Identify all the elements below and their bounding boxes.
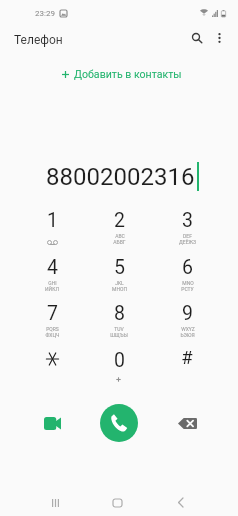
staticText: ШЩЪЫ — [110, 332, 128, 338]
staticText: ИЙКЛ — [45, 286, 59, 292]
staticText: GHI — [48, 280, 57, 286]
staticText: Добавить в контакты — [74, 68, 182, 80]
staticText: 88002002316 — [46, 163, 195, 191]
button[interactable]: 8 — [89, 300, 149, 344]
button[interactable]: Search — [183, 24, 210, 51]
button[interactable]: Back — [168, 490, 193, 515]
button[interactable]: 9 — [157, 300, 217, 344]
staticText: МНОП — [112, 286, 127, 292]
staticText: PQRS — [46, 326, 59, 332]
staticText: 8 — [114, 302, 125, 325]
staticText: ДЕЁЖЗ — [179, 239, 196, 245]
staticText: ФХЦЧ — [45, 332, 60, 338]
staticText: TUV — [114, 326, 124, 332]
staticText: WXYZ — [181, 326, 195, 332]
staticText: 0 — [114, 349, 125, 372]
button[interactable]: 5 — [89, 254, 149, 298]
button[interactable]: Home — [105, 490, 130, 515]
button[interactable]: Call — [100, 404, 138, 442]
staticText: 2 — [114, 209, 125, 232]
button[interactable]: Recent apps — [43, 490, 68, 515]
button[interactable] — [22, 347, 82, 391]
button[interactable]: Video call — [36, 407, 68, 439]
staticText: MNO — [182, 280, 194, 286]
button[interactable]: 3 — [157, 207, 217, 251]
staticText: ЬЭЮЯ — [180, 332, 195, 338]
button[interactable]: # — [157, 347, 217, 391]
button[interactable]: 4 — [22, 254, 82, 298]
staticText: 7 — [47, 302, 58, 325]
staticText: 5 — [114, 256, 125, 279]
staticText: Телефон — [14, 33, 63, 47]
staticText: 23:29 — [35, 9, 55, 18]
staticText: 4 — [47, 256, 58, 279]
button[interactable]: 2 — [89, 207, 149, 251]
staticText: 1 — [47, 209, 58, 232]
staticText: 3 — [182, 209, 193, 232]
staticText: АБВГ — [113, 239, 126, 245]
button[interactable]: 6 — [157, 254, 217, 298]
button[interactable]: Добавить в контакты — [56, 66, 188, 82]
staticText: JKL — [115, 280, 124, 286]
staticText: 6 — [182, 256, 193, 279]
staticText: РСТУ — [181, 286, 194, 292]
button[interactable]: 7 — [22, 300, 82, 344]
button[interactable]: 0 — [89, 347, 149, 391]
staticText: ABC — [115, 233, 125, 239]
staticText: DEF — [183, 233, 192, 239]
staticText: # — [181, 347, 193, 369]
button[interactable]: 1 — [22, 207, 82, 251]
staticText: 9 — [182, 302, 193, 325]
button[interactable]: Backspace — [171, 407, 203, 439]
button[interactable]: More options — [206, 24, 233, 51]
